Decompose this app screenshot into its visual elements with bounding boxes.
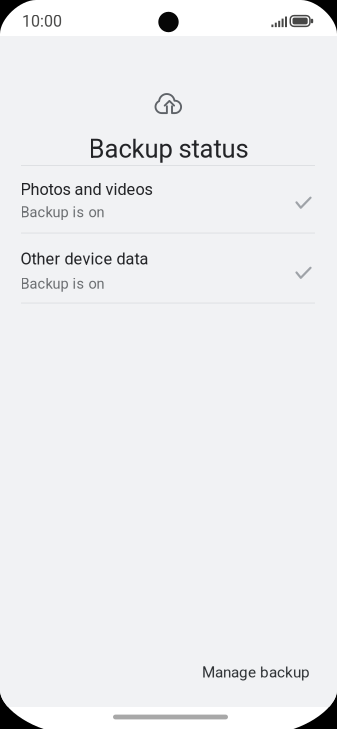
staticText: Backup is on: [20, 275, 104, 292]
staticText: Other device data: [20, 249, 148, 269]
staticText: 10:00: [22, 12, 62, 31]
staticText: Backup is on: [20, 204, 104, 221]
staticText: Manage backup: [202, 663, 310, 681]
button[interactable]: Photos and videos: [0, 165, 337, 233]
staticText: Backup status: [88, 134, 248, 164]
staticText: Photos and videos: [20, 180, 152, 199]
button[interactable]: Other device data: [0, 233, 337, 303]
button[interactable]: Manage backup: [188, 653, 324, 691]
